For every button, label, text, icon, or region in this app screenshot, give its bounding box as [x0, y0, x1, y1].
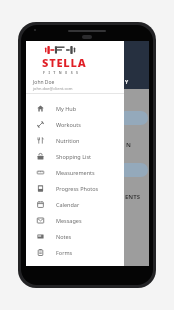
button[interactable]: Measurements	[26, 164, 124, 180]
button[interactable]: Messages	[26, 212, 124, 228]
staticText: Calendar	[56, 201, 80, 208]
staticText: Forms	[56, 249, 73, 256]
staticText: Nutrition	[56, 137, 80, 144]
staticText: Measurements	[56, 169, 95, 176]
button[interactable]: STELLA	[26, 41, 124, 93]
button[interactable]: Progress Photos	[26, 180, 124, 196]
staticText: F I T N E S S	[43, 70, 80, 75]
button[interactable]: Forms	[26, 244, 124, 260]
button[interactable]: Notes	[26, 228, 124, 244]
staticText: STELLA	[42, 55, 87, 70]
staticText: ENTS	[125, 193, 141, 201]
staticText: Notes	[56, 233, 72, 240]
staticText: Progress Photos	[56, 185, 99, 192]
staticText: Messages	[56, 217, 82, 224]
staticText: Shopping List	[56, 153, 92, 160]
staticText: John Doe	[33, 79, 55, 86]
staticText: Y	[125, 79, 129, 86]
button[interactable]: My Hub	[26, 100, 124, 116]
staticText: Workouts	[56, 121, 81, 128]
button[interactable]: Workouts	[26, 116, 124, 132]
button[interactable]: Nutrition	[26, 132, 124, 148]
staticText: john.doe@client.com	[33, 86, 73, 91]
button[interactable]: Calendar	[26, 196, 124, 212]
button[interactable]: Shopping List	[26, 148, 124, 164]
staticText: My Hub	[56, 105, 77, 112]
staticText: N	[126, 141, 131, 149]
